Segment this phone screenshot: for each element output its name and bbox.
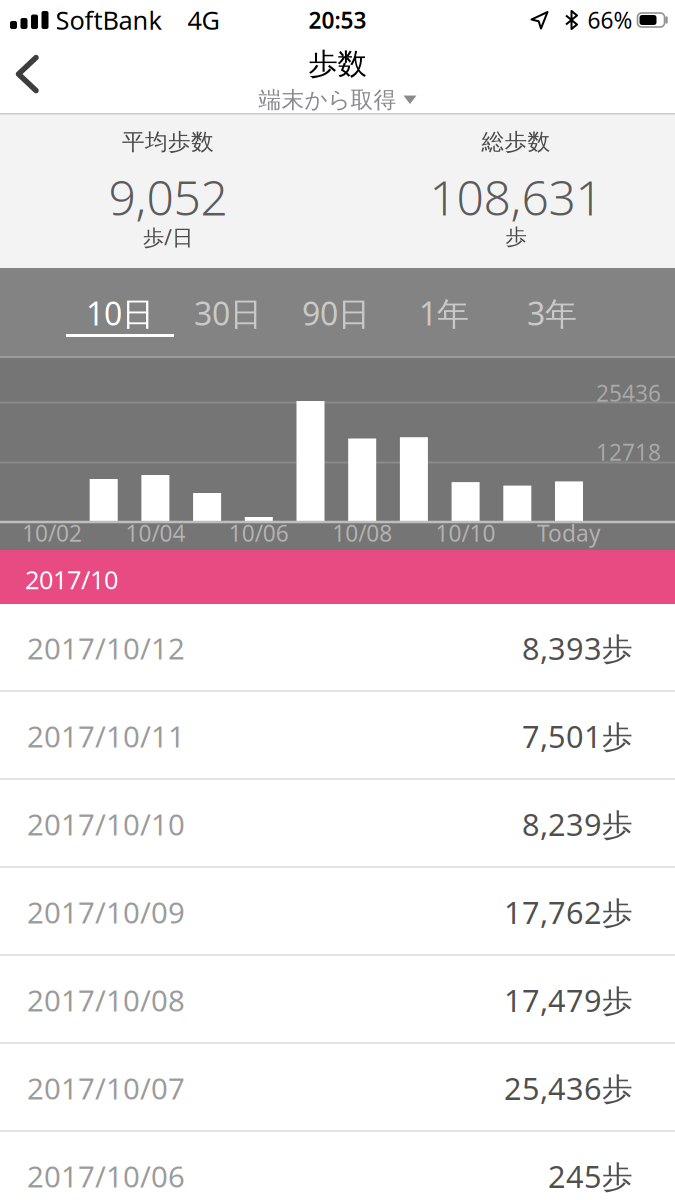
button[interactable]: 2017/10/07 bbox=[0, 1044, 675, 1132]
staticText: 8,239歩 bbox=[522, 804, 633, 844]
button[interactable]: 3年 bbox=[498, 268, 606, 356]
staticText: 2017/10/11 bbox=[27, 716, 185, 755]
staticText: 歩 bbox=[505, 224, 526, 250]
button[interactable]: 2017/10/08 bbox=[0, 956, 675, 1044]
staticText: 端末から取得 bbox=[258, 86, 396, 114]
staticText: 66% bbox=[587, 5, 632, 35]
button[interactable]: 1年 bbox=[390, 268, 498, 356]
staticText: 2017/10 bbox=[25, 563, 118, 596]
staticText: 平均歩数 bbox=[122, 128, 214, 156]
staticText: 2017/10/08 bbox=[27, 980, 185, 1019]
staticText: 20:53 bbox=[308, 5, 366, 35]
staticText: 8,393歩 bbox=[522, 628, 633, 668]
button[interactable]: 2017/10/06 bbox=[0, 1132, 675, 1200]
staticText: 3年 bbox=[527, 292, 577, 334]
staticText: 2017/10/06 bbox=[27, 1156, 185, 1195]
button[interactable]: 2017/10/12 bbox=[0, 604, 675, 692]
button[interactable]: 2017/10/11 bbox=[0, 692, 675, 780]
staticText: 245歩 bbox=[548, 1156, 633, 1196]
staticText: 10/02 bbox=[22, 518, 82, 548]
staticText: Today bbox=[537, 518, 601, 548]
staticText: 7,501歩 bbox=[522, 716, 633, 756]
staticText: 総歩数 bbox=[481, 128, 550, 156]
staticText: 108,631 bbox=[429, 165, 602, 229]
staticText: 2017/10/07 bbox=[27, 1068, 185, 1107]
button[interactable]: 10日 bbox=[66, 268, 174, 356]
staticText: 2017/10/10 bbox=[27, 804, 185, 843]
staticText: 25436 bbox=[596, 378, 661, 408]
staticText: 10/08 bbox=[332, 518, 392, 548]
button[interactable]: 端末から取得 bbox=[258, 86, 416, 114]
staticText: 25,436歩 bbox=[504, 1068, 633, 1108]
button[interactable]: 30日 bbox=[174, 268, 282, 356]
staticText: 12718 bbox=[596, 437, 661, 467]
staticText: 17,479歩 bbox=[504, 980, 633, 1020]
staticText: 30日 bbox=[194, 292, 262, 334]
staticText: 9,052 bbox=[108, 165, 227, 229]
staticText: 4G bbox=[187, 3, 219, 37]
button[interactable]: 2017/10/09 bbox=[0, 868, 675, 956]
staticText: 10/04 bbox=[125, 518, 185, 548]
staticText: 10/10 bbox=[436, 518, 496, 548]
staticText: 歩/日 bbox=[143, 223, 193, 251]
staticText: 2017/10/12 bbox=[27, 628, 185, 667]
staticText: 17,762歩 bbox=[504, 892, 633, 932]
button[interactable]: Back bbox=[0, 39, 39, 93]
staticText: 10日 bbox=[86, 292, 154, 334]
staticText: 10/06 bbox=[229, 518, 289, 548]
staticText: 歩数 bbox=[308, 46, 366, 82]
button[interactable]: 2017/10/10 bbox=[0, 780, 675, 868]
staticText: 1年 bbox=[419, 292, 469, 334]
button[interactable]: 90日 bbox=[282, 268, 390, 356]
staticText: SoftBank bbox=[55, 3, 162, 37]
staticText: 2017/10/09 bbox=[27, 892, 185, 931]
staticText: 90日 bbox=[302, 292, 370, 334]
